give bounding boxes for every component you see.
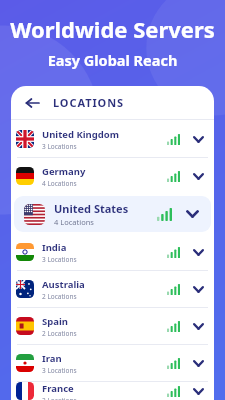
staticText: 2 Locations xyxy=(42,292,77,301)
staticText: India xyxy=(42,241,67,254)
staticText: Iran xyxy=(42,352,62,365)
staticText: United Kingdom xyxy=(42,128,119,141)
button[interactable]: Spain xyxy=(11,308,214,344)
staticText: Spain xyxy=(42,315,68,328)
button[interactable]: Australia xyxy=(11,271,214,307)
staticText: 3 Locations xyxy=(42,142,77,151)
staticText: Worldwide Servers xyxy=(0,14,225,44)
button[interactable]: United Kingdom xyxy=(11,121,214,157)
staticText: 2 Locations xyxy=(42,329,77,338)
button[interactable]: Iran xyxy=(11,345,214,381)
staticText: Easy Global Reach xyxy=(0,50,225,70)
staticText: 2 Locations xyxy=(42,396,77,400)
staticText: Germany xyxy=(42,165,86,178)
staticText: France xyxy=(42,382,74,395)
staticText: 3 Locations xyxy=(42,366,77,375)
button[interactable]: Germany xyxy=(11,158,214,194)
staticText: Australia xyxy=(42,278,85,291)
staticText: 4 Locations xyxy=(54,217,94,227)
staticText: United States xyxy=(54,201,129,216)
staticText: 4 Locations xyxy=(42,179,77,188)
button[interactable]: France xyxy=(11,382,214,400)
button[interactable]: Back xyxy=(21,92,43,114)
staticText: 3 Locations xyxy=(42,255,77,264)
staticText: LOCATIONS xyxy=(53,95,124,110)
button[interactable]: India xyxy=(11,234,214,270)
button[interactable]: United States xyxy=(14,196,211,232)
